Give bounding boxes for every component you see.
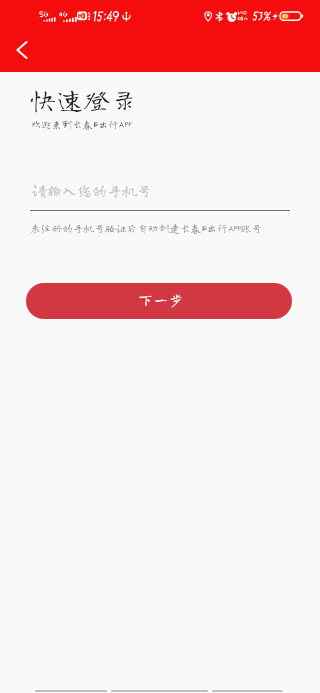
staticText: 快速登录 bbox=[30, 86, 139, 112]
staticText: 欢迎来到长春E出行APP bbox=[31, 119, 132, 129]
button[interactable]: 下一步 bbox=[26, 283, 292, 319]
staticText: 下一步 bbox=[138, 293, 185, 307]
staticText: 请输入您的手机号 bbox=[32, 183, 153, 198]
button[interactable]: Back bbox=[5, 33, 39, 67]
staticText: 未注册的手机号验证后自动创建长春E出行APP账号 bbox=[30, 223, 263, 234]
